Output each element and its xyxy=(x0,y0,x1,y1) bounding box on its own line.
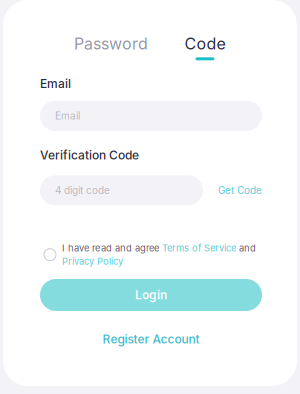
staticText: Register Account xyxy=(102,332,199,346)
button[interactable]: Register Account xyxy=(102,332,199,346)
staticText: and xyxy=(236,242,256,254)
staticText: 4 digit code xyxy=(55,184,110,196)
button[interactable]: Agree to the terms xyxy=(44,249,56,261)
staticText: Privacy Policy xyxy=(62,256,123,267)
staticText: Verification Code xyxy=(40,148,139,162)
staticText: Password xyxy=(74,34,148,53)
staticText: I have read and agree xyxy=(62,242,162,254)
button[interactable]: Code xyxy=(158,34,252,60)
button[interactable]: Password xyxy=(64,34,158,60)
staticText: Email xyxy=(40,76,71,91)
button[interactable]: Terms of Service xyxy=(162,242,236,254)
staticText: Get Code xyxy=(218,184,262,196)
button[interactable]: Login xyxy=(40,279,262,311)
staticText: Terms of Service xyxy=(162,242,236,254)
button[interactable]: Get Code xyxy=(218,184,262,196)
button[interactable]: Privacy Policy xyxy=(62,256,123,267)
staticText: Login xyxy=(135,288,167,302)
staticText: Code xyxy=(184,34,225,53)
staticText: Email xyxy=(55,110,80,122)
